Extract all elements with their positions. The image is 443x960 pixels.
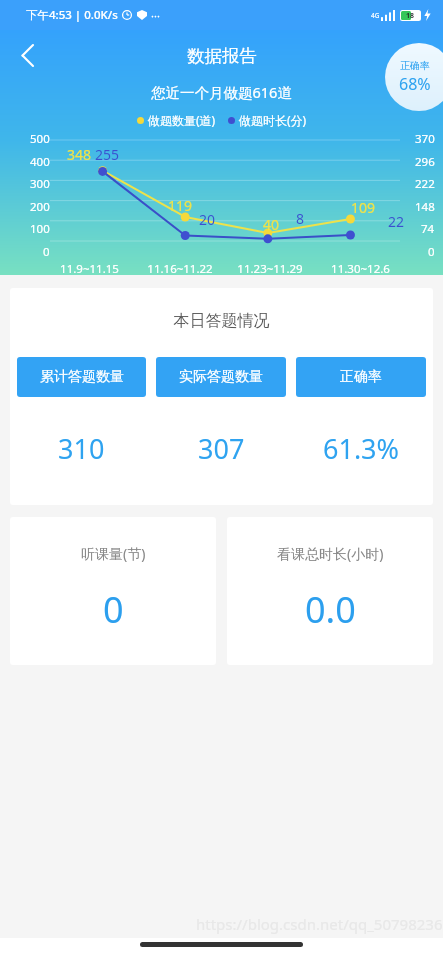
button[interactable]: 实际答题数量 (156, 357, 286, 397)
staticText: 119 (168, 196, 193, 215)
staticText: 0 (428, 244, 435, 260)
staticText: 4G (371, 11, 380, 20)
staticText: 实际答题数量 (179, 368, 263, 386)
staticText: 200 (30, 199, 50, 215)
staticText: 222 (415, 176, 435, 192)
button[interactable]: 看课总时长(小时) (227, 517, 433, 665)
button[interactable]: 累计答题数量 (17, 357, 146, 397)
staticText: https://blog.csdn.net/qq_50798236 (196, 914, 443, 934)
staticText: 74 (421, 221, 435, 237)
staticText: 400 (30, 154, 50, 170)
staticText: 做题数量(道) (148, 112, 216, 128)
staticText: 20 (199, 210, 216, 229)
staticText: ··· (151, 8, 160, 23)
staticText: 11.23~11.29 (237, 261, 303, 275)
staticText: 正确率 (400, 59, 430, 72)
staticText: 310 (58, 430, 105, 467)
staticText: 148 (415, 199, 435, 215)
staticText: 8 (296, 209, 305, 228)
staticText: 348 (67, 145, 92, 164)
button[interactable]: 正确率 (296, 357, 426, 397)
staticText: 370 (415, 131, 435, 147)
button[interactable]: Back (6, 34, 48, 76)
staticText: 109 (351, 198, 376, 217)
staticText: 61.3% (323, 430, 400, 467)
staticText: 300 (30, 176, 50, 192)
staticText: 40 (263, 215, 280, 234)
staticText: 0 (43, 244, 50, 260)
staticText: 11.30~12.6 (331, 261, 390, 275)
staticText: 255 (95, 145, 120, 164)
staticText: 296 (415, 154, 435, 170)
staticText: 做题时长(分) (239, 112, 307, 128)
staticText: 正确率 (340, 368, 382, 386)
staticText: 本日答题情况 (10, 311, 433, 331)
staticText: 307 (198, 430, 245, 467)
staticText: 0.0 (305, 585, 356, 634)
staticText: 听课量(节) (81, 544, 146, 563)
staticText: 22 (388, 212, 405, 231)
staticText: 68% (399, 73, 431, 95)
staticText: 下午4:53 | 0.0K/s (26, 7, 118, 23)
staticText: 0 (103, 585, 124, 634)
staticText: 500 (30, 131, 50, 147)
staticText: 累计答题数量 (40, 368, 124, 386)
staticText: 11.9~11.15 (60, 261, 119, 275)
button[interactable]: 正确率 (385, 43, 443, 111)
staticText: 您近一个月做题616道 (151, 82, 292, 102)
staticText: 100 (30, 221, 50, 237)
button[interactable]: 听课量(节) (10, 517, 216, 665)
staticText: 数据报告 (187, 45, 257, 67)
staticText: 看课总时长(小时) (277, 544, 384, 563)
staticText: 11.16~11.22 (147, 261, 213, 275)
staticText: 18 (406, 11, 415, 21)
